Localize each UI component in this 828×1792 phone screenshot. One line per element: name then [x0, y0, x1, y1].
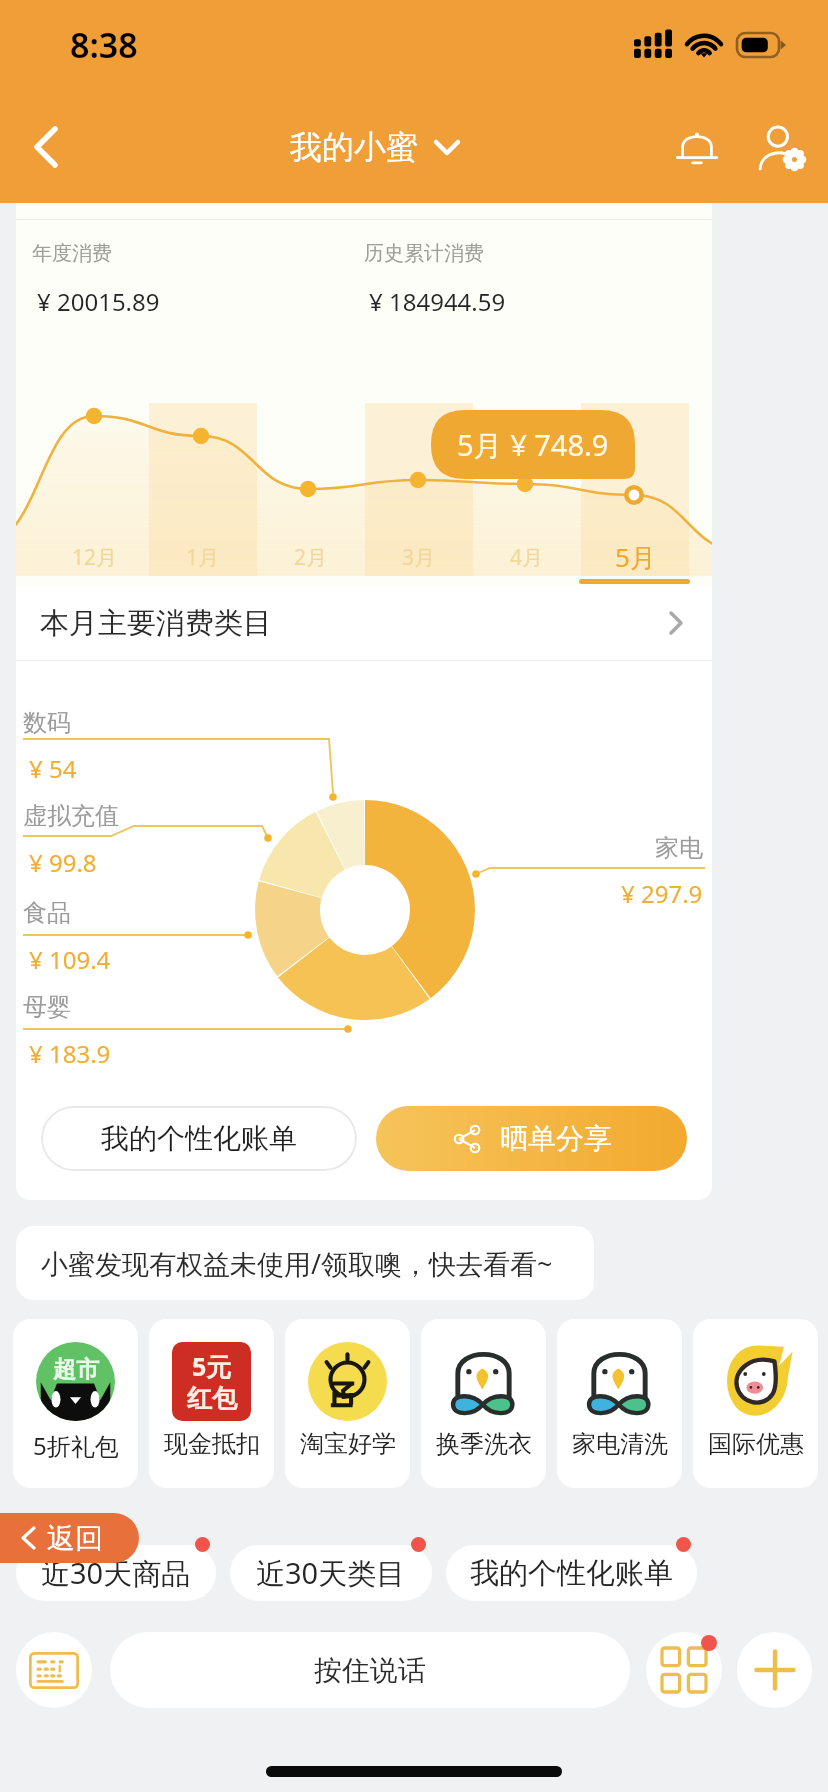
staticText: 5元 — [192, 1349, 232, 1383]
button[interactable]: 小蜜发现有权益未使用/领取噢，快去看看~ — [16, 1226, 594, 1300]
staticText: 近30天商品 — [41, 1553, 191, 1593]
button[interactable]: 晒单分享 — [376, 1106, 687, 1171]
staticText: 年度消费 — [32, 241, 112, 266]
button[interactable]: 本月主要消费类目 — [16, 586, 712, 660]
staticText: 食品 — [23, 898, 71, 928]
button[interactable]: 近30天商品 — [16, 1545, 216, 1601]
button[interactable]: 淘宝好学 — [285, 1319, 410, 1488]
staticText: 现金抵扣 — [164, 1429, 260, 1459]
button[interactable]: 近30天类目 — [230, 1545, 432, 1601]
button[interactable]: Add — [737, 1632, 812, 1708]
staticText: 近30天类目 — [256, 1553, 406, 1593]
staticText: 超市 — [53, 1355, 99, 1384]
staticText: 国际优惠 — [708, 1429, 804, 1459]
button[interactable]: Back — [0, 102, 92, 192]
staticText: ¥ 109.4 — [29, 943, 111, 976]
staticText: 我的个性化账单 — [101, 1121, 297, 1156]
button[interactable]: 返回 — [0, 1513, 139, 1563]
staticText: 4月 — [510, 543, 544, 572]
staticText: 2月 — [294, 543, 328, 572]
staticText: 家电 — [655, 833, 703, 863]
button[interactable]: 超市 — [13, 1319, 138, 1488]
staticText: 小蜜发现有权益未使用/领取噢，快去看看~ — [41, 1245, 553, 1282]
staticText: 1月 — [186, 543, 220, 572]
staticText: 换季洗衣 — [436, 1429, 532, 1459]
button[interactable]: 我的小蜜 — [280, 119, 470, 175]
button[interactable]: Account settings — [736, 102, 828, 192]
staticText: 3月 — [402, 543, 436, 572]
button[interactable]: 家电清洗 — [557, 1319, 682, 1488]
staticText: 返回 — [47, 1521, 103, 1556]
button[interactable]: 我的个性化账单 — [41, 1106, 357, 1171]
staticText: ¥ 297.9 — [621, 877, 703, 910]
staticText: 按住说话 — [314, 1653, 426, 1688]
staticText: 5折礼包 — [33, 1429, 119, 1462]
staticText: 历史累计消费 — [364, 241, 484, 266]
staticText: 本月主要消费类目 — [40, 605, 272, 642]
staticText: ¥ 20015.89 — [37, 285, 160, 318]
staticText: 我的小蜜 — [290, 127, 418, 167]
staticText: 家电清洗 — [572, 1429, 668, 1459]
staticText: 12月 — [72, 543, 118, 572]
staticText: 数码 — [23, 708, 71, 738]
button[interactable]: Keyboard — [16, 1632, 92, 1708]
staticText: 8:38 — [70, 22, 138, 68]
staticText: ¥ 184944.59 — [369, 285, 506, 318]
staticText: 5月 — [615, 539, 656, 575]
staticText: ¥ 54 — [29, 752, 77, 785]
button[interactable]: 换季洗衣 — [421, 1319, 546, 1488]
staticText: 红包 — [187, 1383, 237, 1414]
button[interactable]: 国际优惠 — [693, 1319, 818, 1488]
staticText: 晒单分享 — [500, 1121, 612, 1156]
button[interactable]: More options — [646, 1632, 722, 1708]
staticText: 淘宝好学 — [300, 1429, 396, 1459]
staticText: 虚拟充值 — [23, 801, 119, 831]
button[interactable]: Notifications — [658, 102, 736, 192]
staticText: ¥ 99.8 — [29, 846, 97, 879]
button[interactable]: 我的个性化账单 — [446, 1545, 697, 1601]
staticText: 母婴 — [23, 992, 71, 1022]
button[interactable]: 按住说话 — [110, 1632, 630, 1708]
staticText: 5月 ¥ 748.9 — [457, 425, 609, 465]
staticText: ¥ 183.9 — [29, 1037, 111, 1070]
staticText: 我的个性化账单 — [470, 1555, 673, 1592]
button[interactable]: 5元 — [149, 1319, 274, 1488]
